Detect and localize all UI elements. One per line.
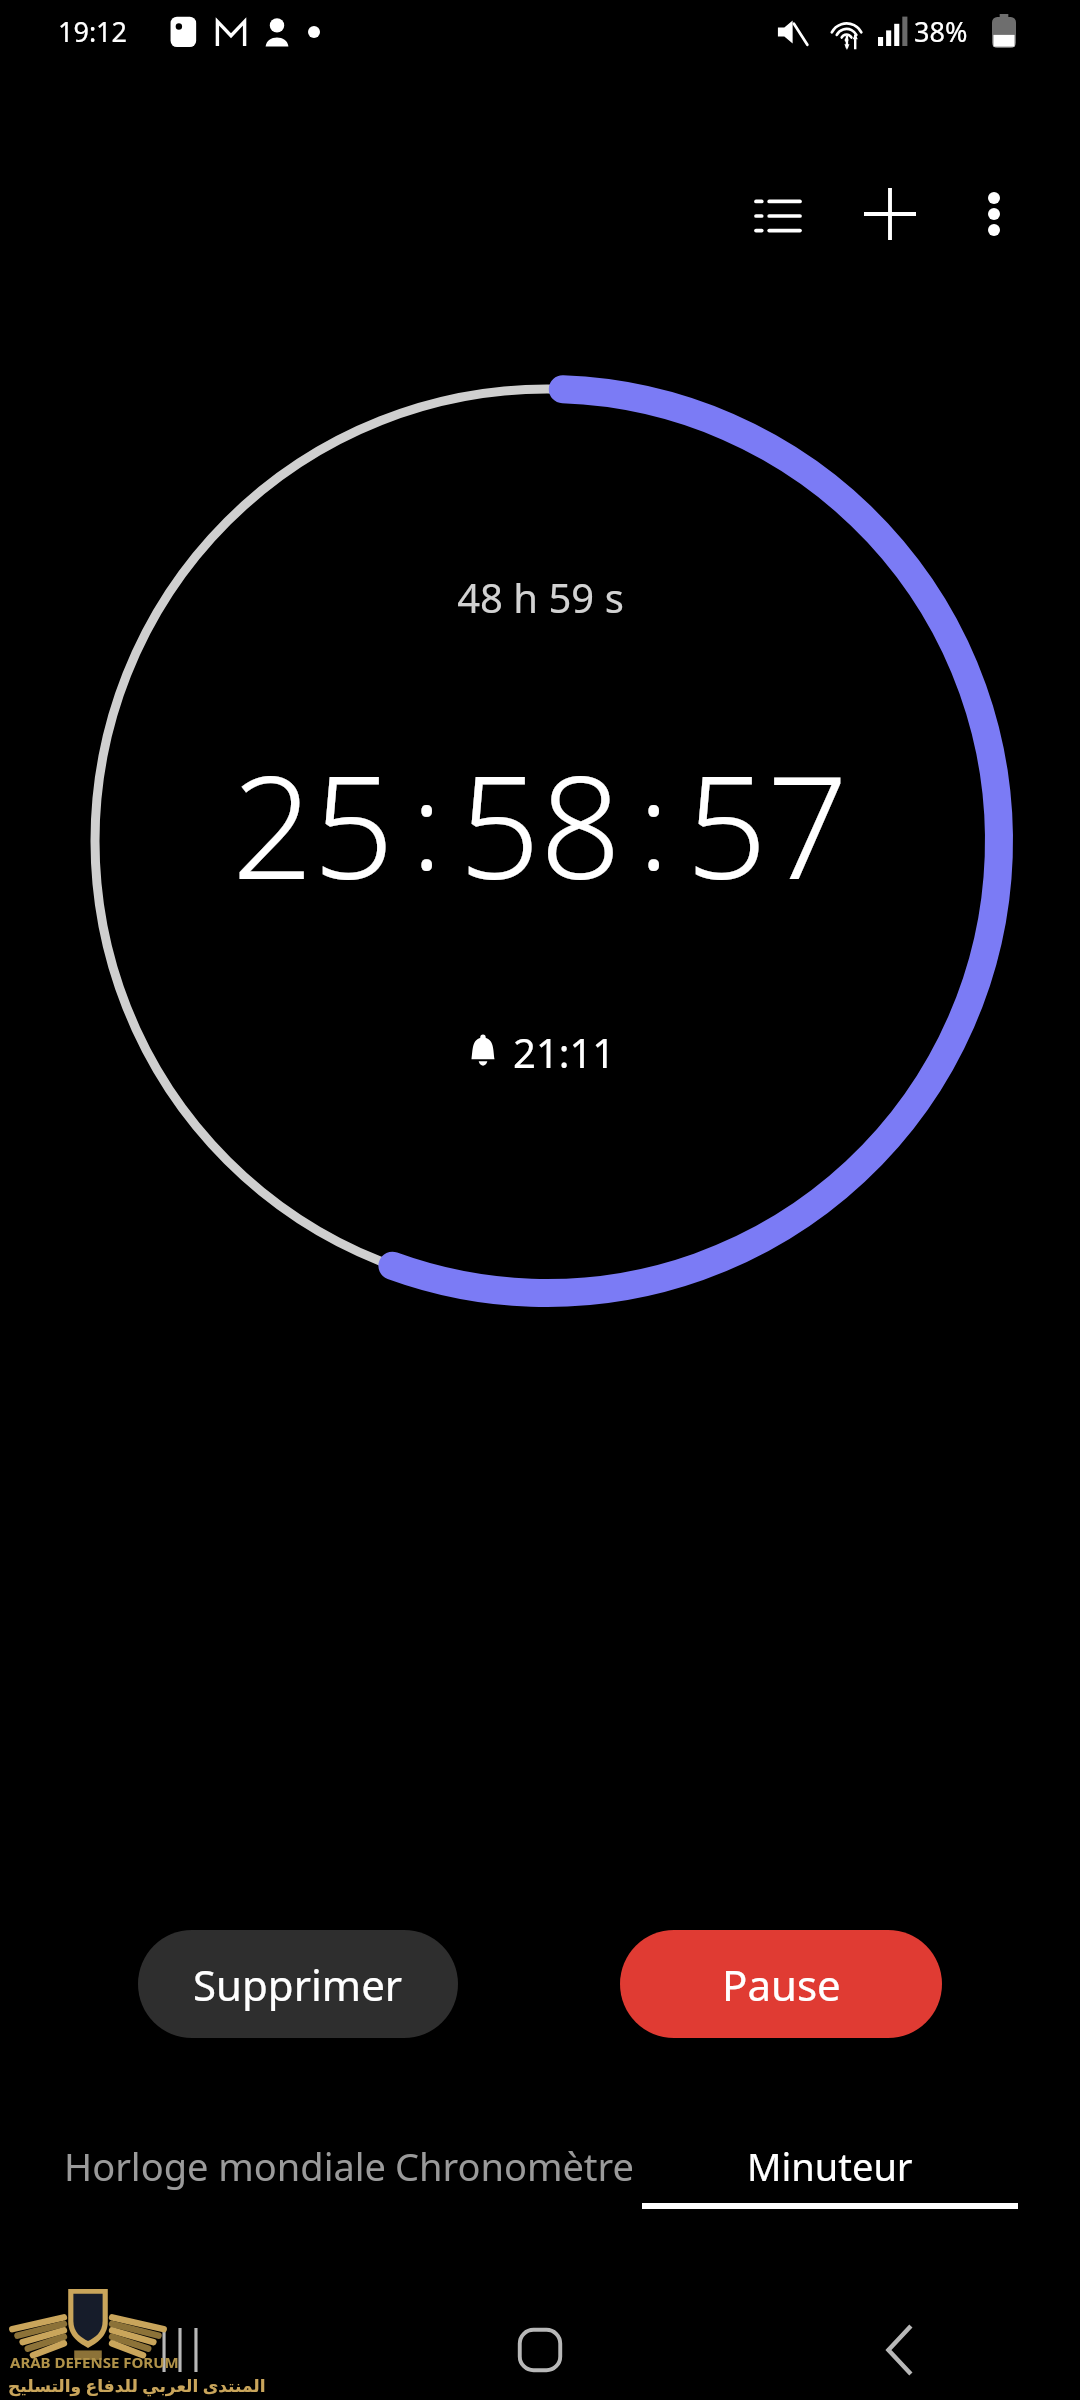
staticText: 48 h 59 s xyxy=(457,570,624,624)
staticText: : xyxy=(639,742,669,905)
button[interactable]: Minuteur xyxy=(638,2136,1022,2213)
button[interactable]: Horloge mondiale xyxy=(60,2136,391,2196)
button[interactable]: Chronomètre xyxy=(391,2136,638,2196)
staticText: 25 xyxy=(232,727,395,920)
button[interactable]: Add timer xyxy=(852,176,928,252)
staticText: 57 xyxy=(686,727,849,920)
staticText: Chronomètre xyxy=(395,2140,634,2192)
staticText: : xyxy=(412,742,442,905)
button[interactable]: Back xyxy=(720,2300,1080,2400)
button[interactable]: Recent apps xyxy=(0,2300,360,2400)
staticText: Minuteur xyxy=(747,2140,913,2192)
staticText: Supprimer xyxy=(193,1956,403,2013)
staticText: 21:11 xyxy=(513,1025,616,1079)
staticText: Pause xyxy=(722,1956,841,2013)
staticText: 38% xyxy=(914,13,968,50)
button[interactable]: Timer presets xyxy=(742,180,814,252)
button[interactable]: Pause xyxy=(620,1930,942,2038)
button[interactable]: Home xyxy=(360,2300,720,2400)
staticText: المنتدى العربي للدفاع والتسليح xyxy=(8,2374,266,2397)
staticText: 58 xyxy=(459,727,622,920)
staticText: ARAB DEFENSE FORUM xyxy=(10,2352,179,2372)
staticText: Horloge mondiale xyxy=(64,2140,387,2192)
staticText: 19:12 xyxy=(58,13,128,50)
button[interactable]: Supprimer xyxy=(138,1930,458,2038)
button[interactable]: More options xyxy=(958,178,1030,250)
